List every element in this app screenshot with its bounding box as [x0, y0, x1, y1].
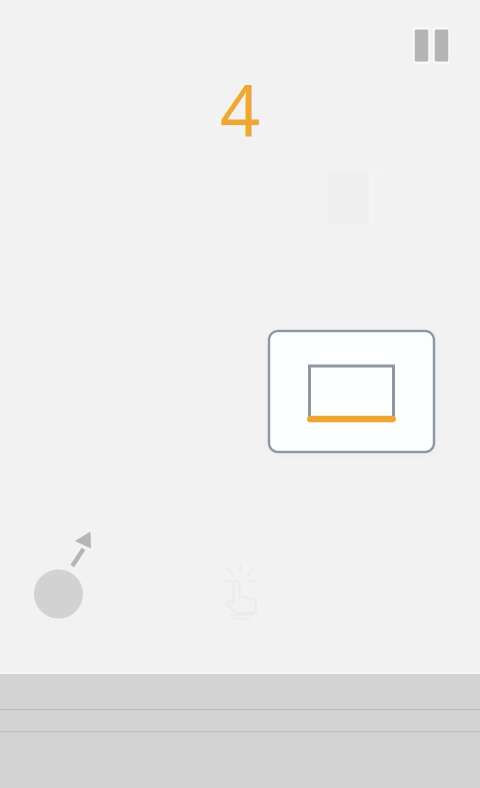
button[interactable]: Pause: [403, 17, 459, 73]
button[interactable]: Launch ball: [0, 0, 480, 788]
staticText: 4: [220, 62, 260, 156]
